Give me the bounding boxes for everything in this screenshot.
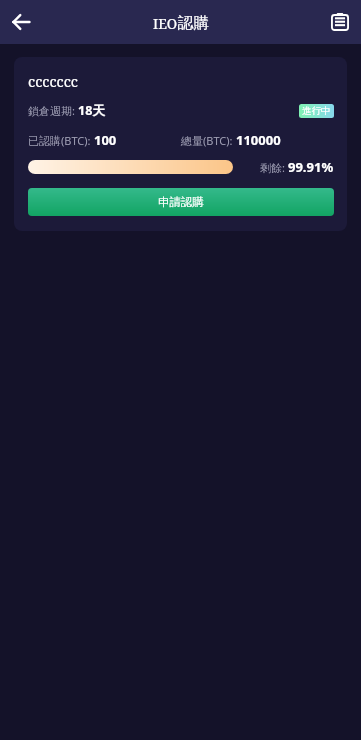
button[interactable]: Back <box>2 3 40 41</box>
button[interactable]: 進行中 <box>299 104 334 118</box>
staticText: IEO <box>153 14 178 33</box>
button[interactable]: Records <box>323 5 357 39</box>
button[interactable]: 申請認購 <box>28 188 334 216</box>
staticText: ccccccc <box>28 71 78 91</box>
staticText: 進行中 <box>302 105 331 117</box>
staticText: 110000 <box>236 131 281 149</box>
staticText: 申請認購 <box>158 195 204 209</box>
staticText: 18天 <box>78 102 105 119</box>
staticText: 99.91% <box>288 158 334 176</box>
staticText: 100 <box>94 131 117 149</box>
staticText: 剩餘: <box>260 160 288 175</box>
staticText: 總量(BTC): <box>181 133 236 148</box>
staticText: 認購 <box>178 13 209 33</box>
staticText: 已認購(BTC): <box>28 133 94 148</box>
staticText: 鎖倉週期: <box>28 103 78 118</box>
